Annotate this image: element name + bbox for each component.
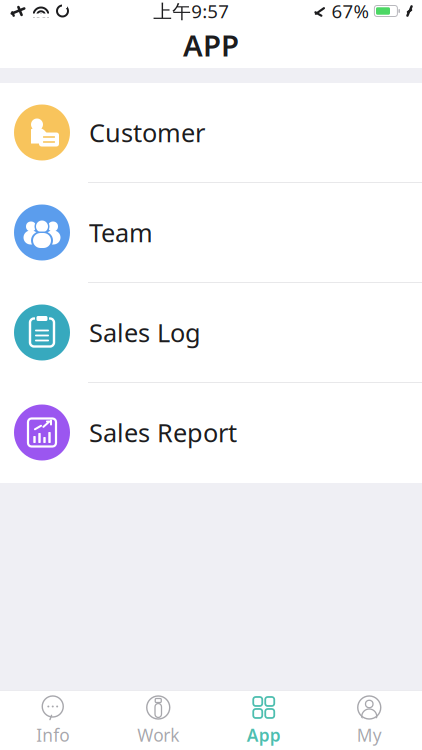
staticText: My: [357, 723, 382, 746]
button[interactable]: Customer: [0, 83, 422, 183]
staticText: 67%: [331, 0, 369, 23]
button[interactable]: Info: [0, 691, 105, 750]
button[interactable]: Sales Report: [0, 383, 422, 483]
button[interactable]: App: [211, 691, 316, 750]
staticText: 上午9:57: [153, 0, 229, 23]
button[interactable]: My: [316, 691, 422, 750]
staticText: APP: [183, 25, 239, 64]
staticText: Work: [137, 723, 179, 746]
button[interactable]: Work: [105, 691, 211, 750]
button[interactable]: Sales Log: [0, 283, 422, 383]
staticText: Team: [89, 216, 153, 249]
staticText: Sales Report: [89, 416, 237, 449]
staticText: App: [247, 723, 281, 746]
staticText: Info: [36, 723, 69, 746]
staticText: Sales Log: [89, 316, 201, 349]
staticText: Customer: [89, 116, 205, 149]
button[interactable]: Team: [0, 183, 422, 283]
